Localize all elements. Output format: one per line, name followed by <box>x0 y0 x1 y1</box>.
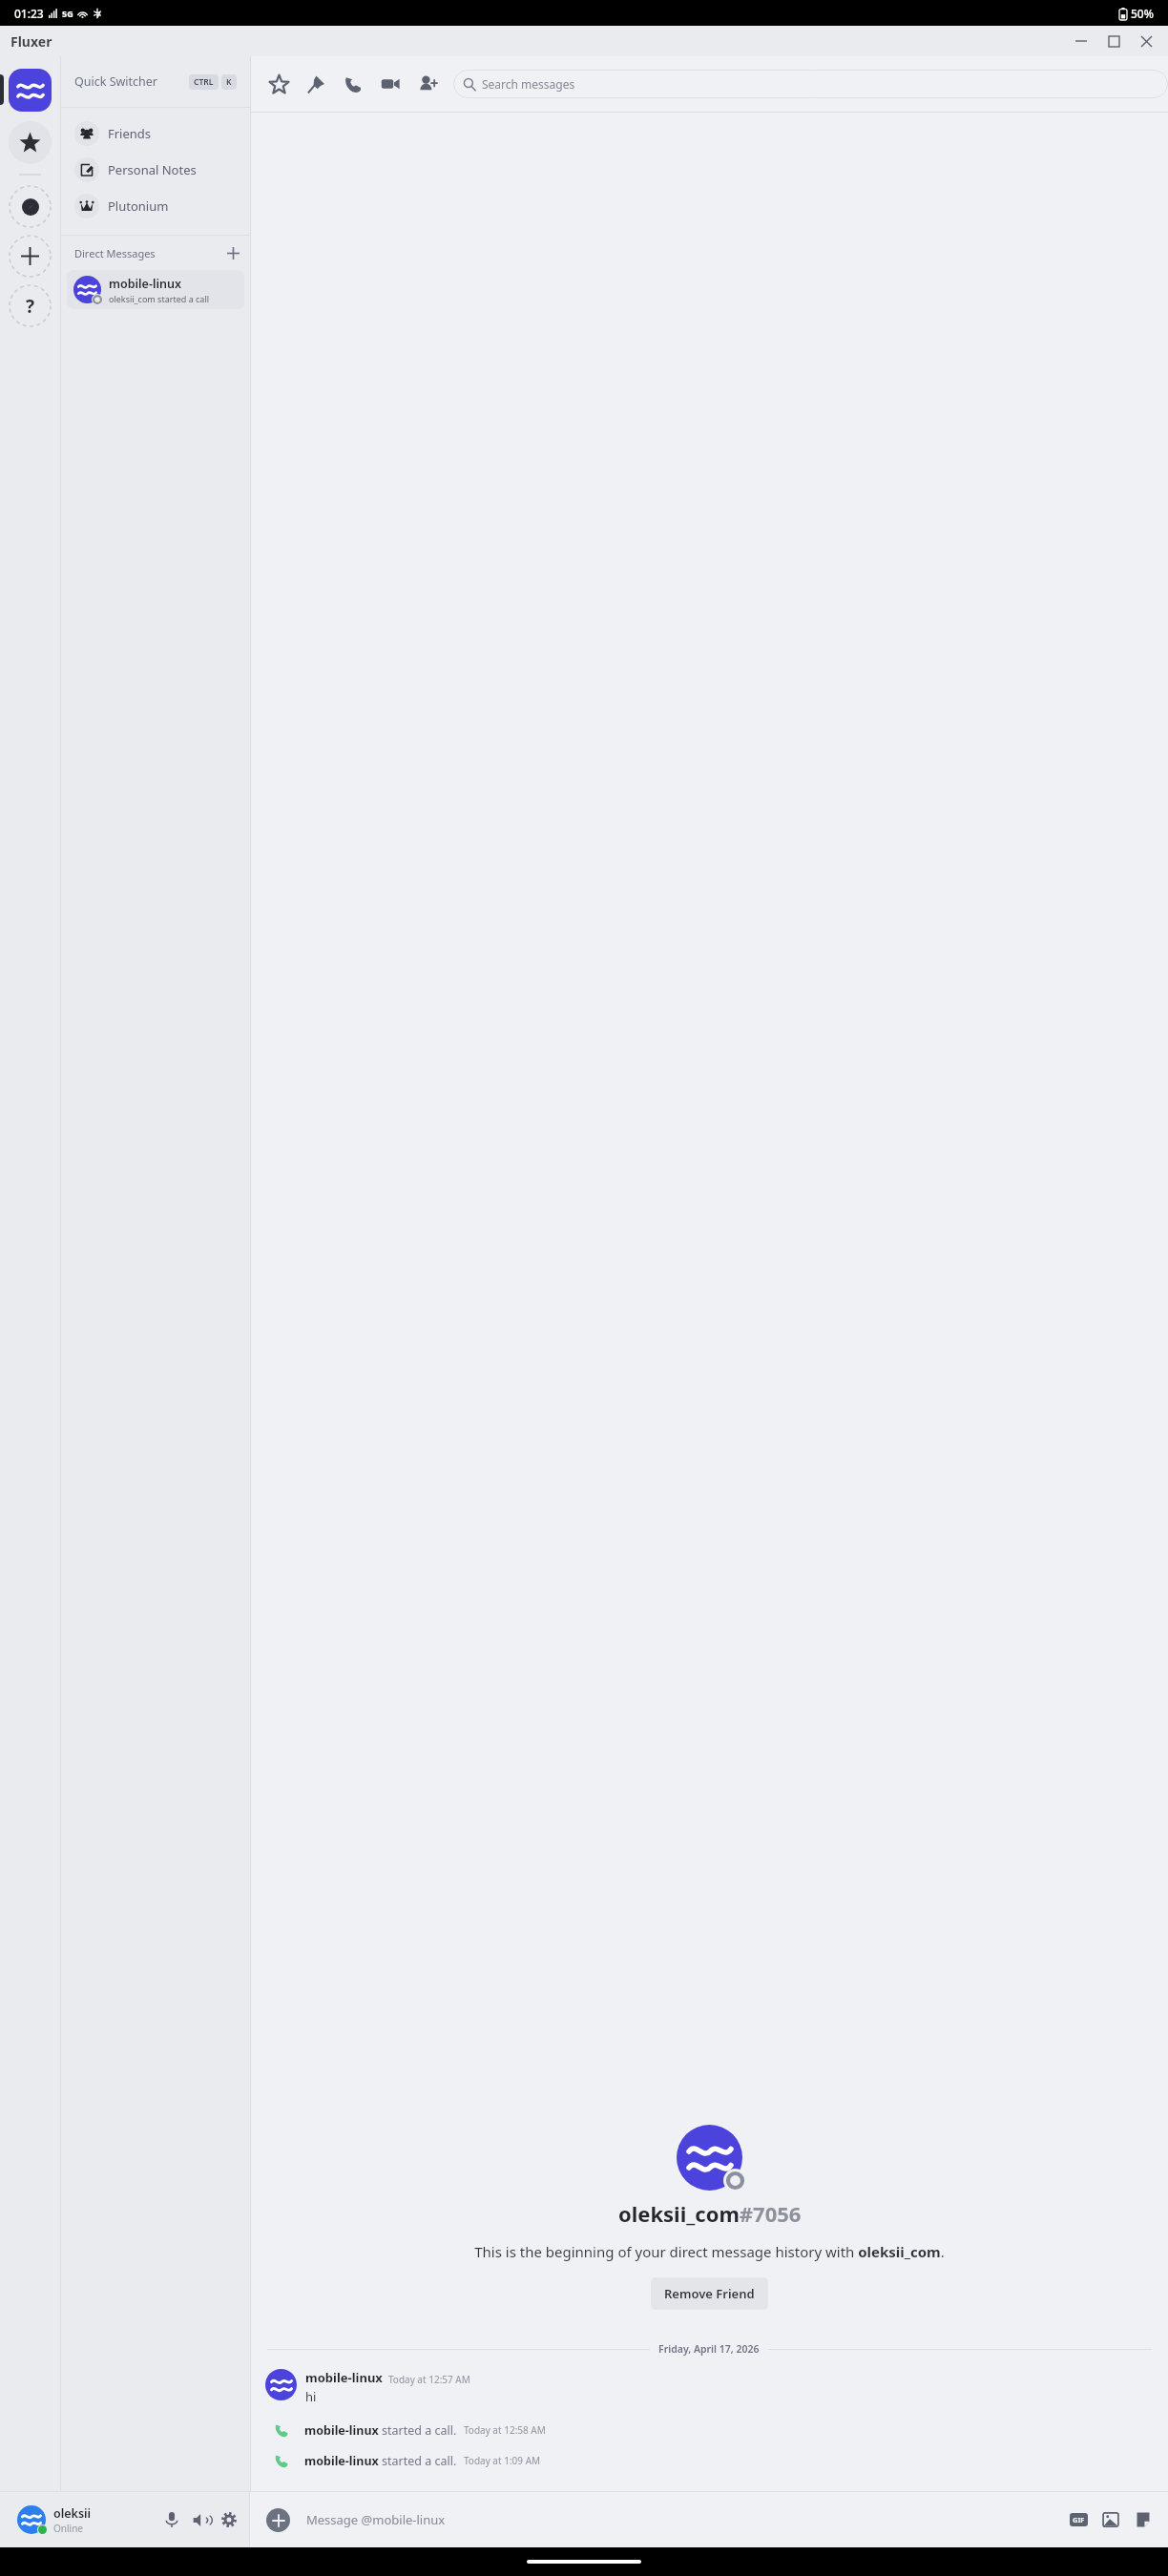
staticText: mobile-linux started a call. <box>304 2453 457 2469</box>
staticText: 50% <box>1131 6 1154 21</box>
staticText: Direct Messages <box>74 246 156 260</box>
button[interactable]: Send an image <box>1098 2507 1123 2532</box>
staticText: Search messages <box>482 76 575 92</box>
button[interactable]: Direct Messages <box>61 236 250 270</box>
button[interactable]: Add friend <box>415 72 440 96</box>
button[interactable]: Favorite <box>266 72 291 96</box>
button[interactable]: Remove Friend <box>651 2277 768 2310</box>
staticText: Quick Switcher <box>74 73 158 90</box>
staticText: ? <box>26 294 35 319</box>
button[interactable]: Search messages <box>453 70 1168 98</box>
staticText: oleksii <box>53 2505 92 2522</box>
button[interactable]: Minimize <box>1065 26 1097 56</box>
staticText: mobile-linux <box>305 2369 383 2386</box>
button[interactable]: Start voice call <box>341 72 365 96</box>
button[interactable]: Pinned messages <box>303 72 328 96</box>
button[interactable]: Plutonium <box>61 188 250 224</box>
button[interactable]: Close <box>1130 26 1162 56</box>
staticText: 5G <box>62 8 73 19</box>
staticText: Today at 12:58 AM <box>464 2423 546 2437</box>
staticText: K <box>226 76 232 88</box>
staticText: Today at 12:57 AM <box>388 2373 470 2386</box>
button[interactable]: Deafen <box>189 2508 212 2531</box>
button[interactable]: Fluxer server <box>9 69 52 112</box>
staticText: Friends <box>108 125 152 142</box>
staticText: GIF <box>1073 2515 1085 2524</box>
staticText: oleksii_com#7056 <box>618 2199 802 2228</box>
button[interactable]: Attach file <box>266 2508 290 2532</box>
button[interactable]: Send a sticker <box>1131 2507 1156 2532</box>
button[interactable]: Favorites <box>9 121 52 164</box>
staticText: Today at 1:09 AM <box>464 2454 541 2467</box>
button[interactable]: Add server <box>9 235 52 278</box>
staticText: Fluxer <box>10 32 52 51</box>
staticText: mobile-linux started a call. <box>304 2422 457 2439</box>
staticText: CTRL <box>194 76 214 88</box>
staticText: Message @mobile-linux <box>306 2511 446 2528</box>
button[interactable]: Send a GIF <box>1066 2507 1091 2532</box>
button[interactable]: Settings <box>218 2508 240 2531</box>
staticText: 01:23 <box>14 6 44 21</box>
staticText: hi <box>305 2388 317 2405</box>
staticText: Remove Friend <box>664 2285 755 2302</box>
staticText: Online <box>53 2522 83 2535</box>
button[interactable]: Explore <box>9 185 52 228</box>
button[interactable]: Friends <box>61 115 250 152</box>
staticText: oleksii_com started a call <box>109 293 210 304</box>
staticText: mobile-linux <box>109 276 181 292</box>
staticText: This is the beginning of your direct mes… <box>272 2242 1147 2261</box>
button[interactable]: oleksii <box>0 2492 249 2547</box>
button[interactable]: Maximize <box>1097 26 1130 56</box>
button[interactable]: Personal Notes <box>61 152 250 188</box>
staticText: Personal Notes <box>108 161 197 178</box>
button[interactable]: Start video call <box>378 72 403 96</box>
staticText: Friday, April 17, 2026 <box>658 2342 760 2356</box>
button[interactable]: Mute microphone <box>160 2508 183 2531</box>
staticText: Plutonium <box>108 197 169 215</box>
button[interactable]: mobile-linux <box>67 270 244 309</box>
button[interactable]: Help <box>9 284 52 327</box>
button[interactable]: Quick Switcher <box>61 56 250 107</box>
